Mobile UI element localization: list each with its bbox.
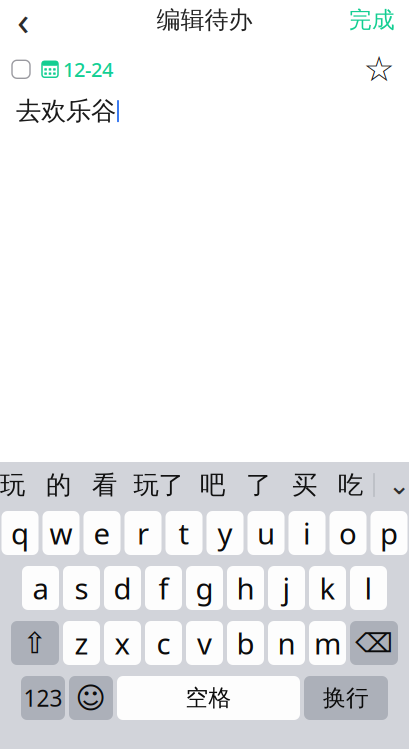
staticText: l — [364, 568, 372, 607]
staticText: n — [277, 623, 295, 662]
staticText: 123 — [23, 683, 62, 713]
staticText: k — [319, 568, 335, 607]
button[interactable]: p — [370, 511, 407, 555]
staticText: 玩了 — [133, 469, 183, 500]
staticText: v — [197, 623, 212, 662]
button[interactable]: 的 — [35, 462, 81, 508]
staticText: h — [236, 568, 254, 607]
staticText: 去欢乐谷 — [16, 96, 116, 127]
button[interactable]: Shift — [11, 621, 59, 665]
button[interactable]: z — [63, 621, 100, 665]
staticText: z — [74, 623, 88, 662]
button[interactable]: 空格 — [117, 676, 300, 720]
button[interactable]: 完成 — [335, 1, 409, 39]
button[interactable]: 吃 — [327, 462, 373, 508]
staticText: w — [49, 513, 72, 552]
button[interactable]: 收藏 — [357, 52, 401, 86]
button[interactable]: 删除 — [350, 621, 398, 665]
staticText: p — [380, 513, 398, 552]
staticText: ⌄ — [388, 470, 409, 500]
button[interactable]: g — [186, 566, 223, 610]
staticText: y — [217, 513, 232, 552]
button[interactable]: 12-24 — [42, 50, 121, 89]
button[interactable]: m — [309, 621, 346, 665]
button[interactable]: u — [247, 511, 284, 555]
staticText: 12-24 — [63, 56, 113, 83]
staticText: i — [303, 513, 311, 552]
staticText: ☆ — [363, 50, 394, 89]
staticText: o — [339, 513, 357, 552]
button[interactable]: e — [83, 511, 120, 555]
button[interactable]: y — [206, 511, 243, 555]
button[interactable]: 玩 — [0, 462, 35, 508]
staticText: 看 — [92, 469, 117, 500]
staticText: 空格 — [185, 684, 231, 712]
staticText: e — [93, 513, 110, 552]
button[interactable]: v — [186, 621, 223, 665]
staticText: ‹ — [17, 0, 29, 46]
staticText: s — [74, 568, 88, 607]
staticText: b — [236, 623, 254, 662]
staticText: g — [195, 568, 213, 607]
button[interactable]: c — [145, 621, 182, 665]
button[interactable]: 完成勾选框 — [0, 52, 42, 86]
button[interactable]: s — [63, 566, 100, 610]
button[interactable]: x — [104, 621, 141, 665]
button[interactable]: 123 — [21, 676, 65, 720]
button[interactable]: k — [309, 566, 346, 610]
staticText: d — [113, 568, 131, 607]
staticText: f — [158, 568, 168, 607]
button[interactable]: f — [145, 566, 182, 610]
staticText: q — [11, 513, 29, 552]
staticText: c — [156, 623, 170, 662]
staticText: x — [114, 623, 130, 662]
staticText: 完成 — [349, 6, 395, 34]
staticText: ⌫ — [355, 628, 393, 658]
button[interactable]: o — [329, 511, 366, 555]
staticText: r — [137, 513, 149, 552]
button[interactable]: 返回 — [0, 1, 46, 39]
staticText: 吃 — [338, 469, 363, 500]
button[interactable]: 玩了 — [127, 462, 189, 508]
button[interactable]: 了 — [235, 462, 281, 508]
staticText: 了 — [246, 469, 271, 500]
staticText: 买 — [292, 469, 317, 500]
button[interactable]: 看 — [81, 462, 127, 508]
staticText: ⇧ — [22, 626, 47, 660]
button[interactable]: l — [350, 566, 387, 610]
staticText: ☺ — [75, 681, 106, 715]
button[interactable]: w — [42, 511, 79, 555]
button[interactable]: 表情 — [69, 676, 113, 720]
staticText: 的 — [46, 469, 71, 500]
button[interactable]: 换行 — [304, 676, 388, 720]
staticText: m — [314, 623, 341, 662]
button[interactable]: 买 — [281, 462, 327, 508]
button[interactable]: n — [268, 621, 305, 665]
button[interactable]: r — [124, 511, 161, 555]
staticText: t — [178, 513, 189, 552]
button[interactable]: t — [165, 511, 202, 555]
staticText: u — [257, 513, 275, 552]
staticText: j — [282, 568, 290, 607]
staticText: 吧 — [200, 469, 225, 500]
button[interactable]: d — [104, 566, 141, 610]
button[interactable]: j — [268, 566, 305, 610]
staticText: 玩 — [0, 469, 25, 500]
button[interactable]: 收起候选 — [374, 462, 409, 508]
staticText: 编辑待办 — [156, 5, 252, 35]
button[interactable]: a — [22, 566, 59, 610]
staticText: 换行 — [323, 684, 369, 712]
button[interactable]: 吧 — [189, 462, 235, 508]
button[interactable]: i — [288, 511, 325, 555]
button[interactable]: q — [1, 511, 38, 555]
button[interactable]: h — [227, 566, 264, 610]
staticText: a — [32, 568, 48, 607]
button[interactable]: b — [227, 621, 264, 665]
